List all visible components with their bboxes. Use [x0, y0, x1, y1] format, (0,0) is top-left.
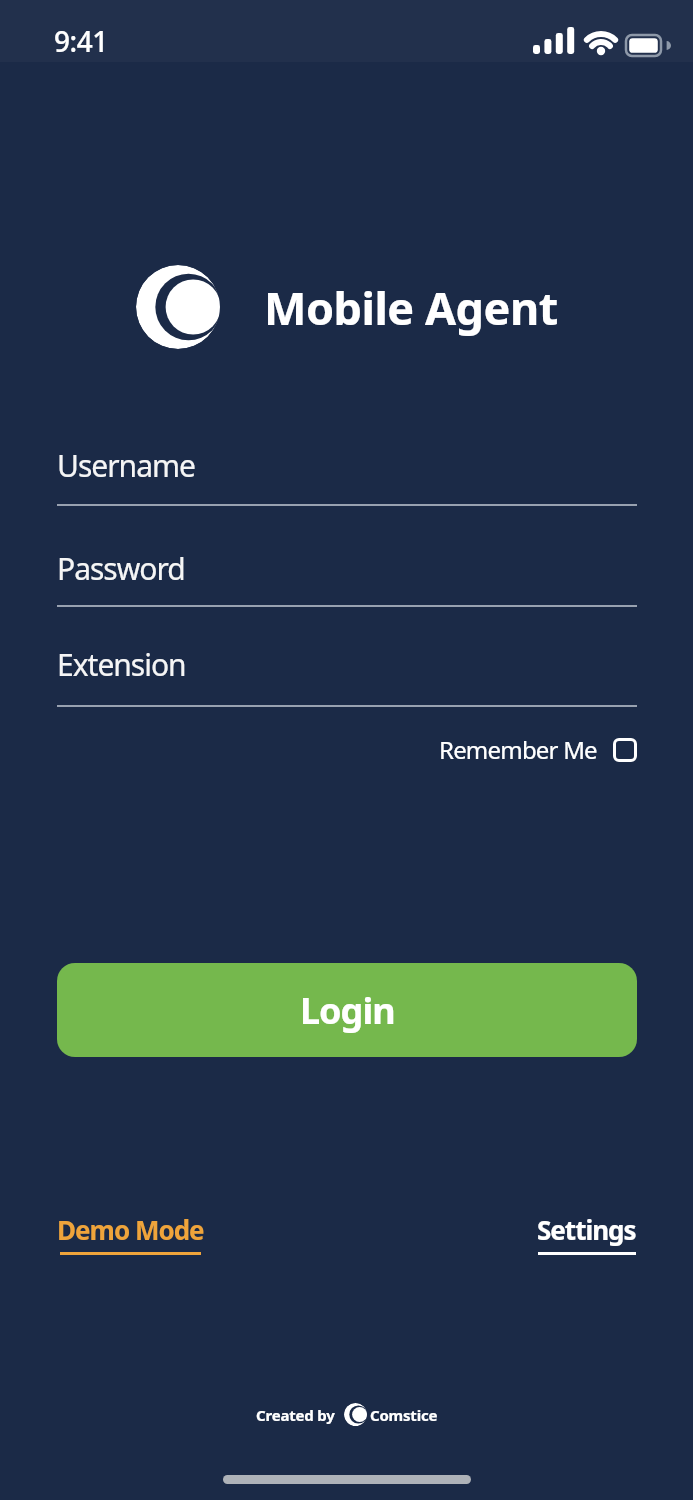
staticText: Login	[300, 986, 395, 1035]
button[interactable]: Demo Mode	[57, 1212, 204, 1255]
staticText: Demo Mode	[57, 1212, 204, 1247]
staticText: 9:41	[54, 22, 108, 60]
staticText: Mobile Agent	[264, 277, 558, 338]
staticText: Username	[57, 445, 195, 486]
button[interactable]: Remember Me	[439, 733, 637, 766]
button[interactable]: Settings	[537, 1212, 636, 1255]
staticText: Comstice	[370, 1405, 438, 1425]
staticText: Extension	[57, 644, 186, 685]
staticText: Settings	[537, 1212, 636, 1247]
staticText: Password	[57, 548, 185, 589]
staticText: Remember Me	[439, 733, 597, 766]
button[interactable]: Login	[57, 963, 637, 1057]
staticText: Created by	[256, 1405, 335, 1425]
